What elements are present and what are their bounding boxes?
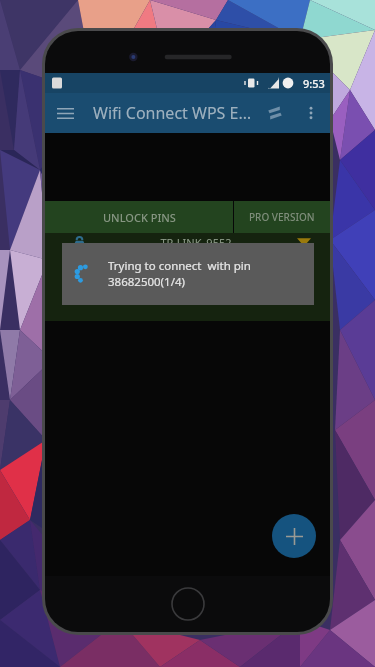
staticText: 38682500(1/4): [108, 274, 185, 290]
button[interactable]: More options: [294, 96, 328, 130]
button[interactable]: Trying to connect with pin: [62, 243, 314, 305]
button[interactable]: [WPA2]: [45, 233, 330, 275]
staticText: PRO VERSION: [249, 210, 315, 224]
button[interactable]: Refresh: [256, 94, 294, 132]
staticText: ch: 5: [70, 260, 88, 271]
button[interactable]: Open navigation drawer: [45, 93, 85, 133]
staticText: 9:53: [303, 76, 325, 91]
staticText: TP-LINK_9552: [160, 235, 232, 250]
staticText: Trying to connect with pin: [108, 258, 251, 274]
staticText: UNLOCK PINS: [103, 210, 176, 225]
button[interactable]: Add network: [272, 514, 316, 558]
button[interactable]: PRO VERSION: [234, 201, 330, 233]
staticText: Wifi Connect WPS E…: [93, 102, 256, 124]
button[interactable]: UNLOCK PINS: [45, 201, 233, 233]
button[interactable]: [WPA2]: [45, 275, 330, 321]
